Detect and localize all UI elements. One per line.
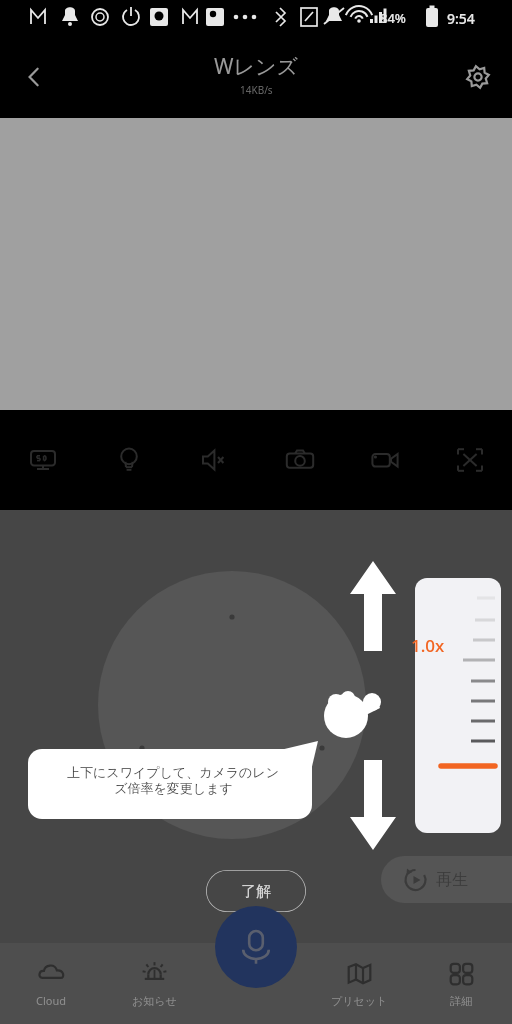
staticText: Wレンズ (214, 52, 299, 81)
button[interactable]: Light (86, 410, 172, 510)
staticText: 84% (380, 9, 406, 27)
staticText: プリセット (331, 994, 388, 1008)
button[interactable]: プリセット (308, 943, 410, 1024)
staticText: 9:54 (447, 9, 475, 28)
staticText: Cloud (36, 993, 67, 1008)
button[interactable]: 詳細 (410, 943, 512, 1024)
staticText: 14KB/s (240, 83, 273, 97)
button[interactable]: Cloud (0, 943, 103, 1024)
button[interactable]: Fullscreen (427, 410, 512, 510)
button[interactable]: Talk (215, 906, 297, 988)
staticText: 了解 (241, 882, 271, 901)
button[interactable]: お知らせ (103, 943, 206, 1024)
button[interactable]: Record (342, 410, 427, 510)
staticText: 上下にスワイプして、カメラのレン (67, 764, 279, 780)
button[interactable]: Settings (452, 51, 504, 103)
staticText: 1.0x (411, 634, 445, 657)
button[interactable]: Zoom slider (415, 578, 501, 833)
button[interactable]: Back (6, 49, 62, 105)
button[interactable]: 了解 (206, 870, 306, 912)
staticText: お知らせ (132, 994, 177, 1008)
button[interactable]: 再生 (381, 856, 512, 903)
staticText: ズ倍率を変更します (114, 780, 233, 796)
staticText: 詳細 (450, 994, 472, 1008)
button[interactable]: Mute (172, 410, 257, 510)
staticText: 再生 (436, 870, 468, 890)
button[interactable]: Quality SD (0, 410, 86, 510)
button[interactable]: Snapshot (257, 410, 342, 510)
